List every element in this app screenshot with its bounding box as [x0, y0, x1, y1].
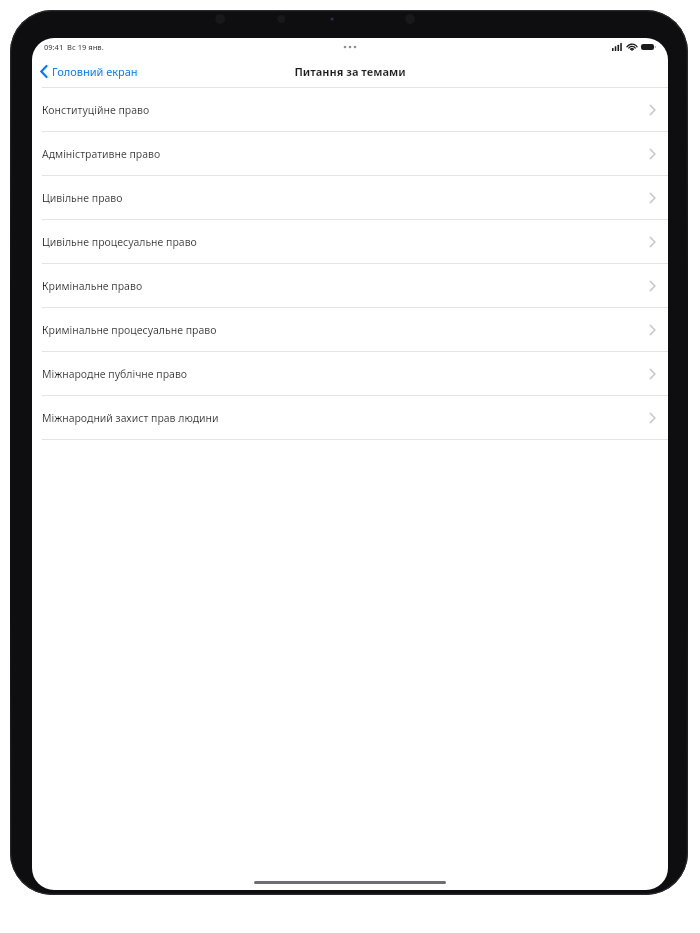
- other: Open Кримінальне процесуальне право: [649, 324, 656, 336]
- staticText: Цивільне процесуальне право: [42, 235, 649, 249]
- staticText: 09:41 Вс 19 янв.: [44, 42, 104, 52]
- button[interactable]: Цивільне право: [32, 176, 668, 219]
- other: Open Кримінальне право: [649, 280, 656, 292]
- staticText: Адміністративне право: [42, 147, 649, 161]
- button[interactable]: Адміністративне право: [32, 132, 668, 175]
- button[interactable]: Конституційне право: [32, 88, 668, 131]
- other: Open Конституційне право: [649, 104, 656, 116]
- button[interactable]: Кримінальне процесуальне право: [32, 308, 668, 351]
- button[interactable]: Міжнародне публічне право: [32, 352, 668, 395]
- button[interactable]: Цивільне процесуальне право: [32, 220, 668, 263]
- button[interactable]: Міжнародний захист прав людини: [32, 396, 668, 439]
- other: Open Адміністративне право: [649, 148, 656, 160]
- other: Open Міжнародне публічне право: [649, 368, 656, 380]
- staticText: Міжнародний захист прав людини: [42, 411, 649, 425]
- button[interactable]: Головний екран: [32, 60, 146, 83]
- other: Open Цивільне право: [649, 192, 656, 204]
- other: Open Цивільне процесуальне право: [649, 236, 656, 248]
- staticText: Головний екран: [52, 64, 138, 79]
- staticText: Кримінальне процесуальне право: [42, 323, 649, 337]
- staticText: Кримінальне право: [42, 279, 649, 293]
- staticText: Цивільне право: [42, 191, 649, 205]
- staticText: Питання за темами: [294, 64, 406, 79]
- staticText: Конституційне право: [42, 103, 649, 117]
- staticText: Міжнародне публічне право: [42, 367, 649, 381]
- button[interactable]: Кримінальне право: [32, 264, 668, 307]
- other: Open Міжнародний захист прав людини: [649, 412, 656, 424]
